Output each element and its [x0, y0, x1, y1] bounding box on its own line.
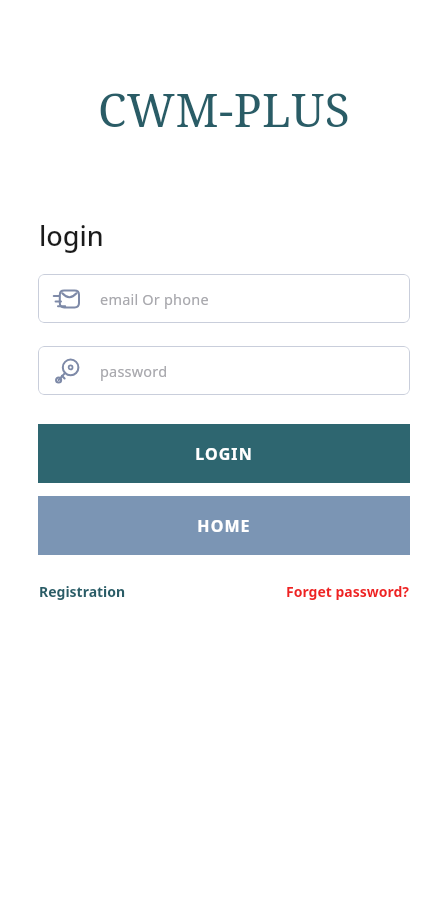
button[interactable]: Email [38, 274, 410, 323]
staticText: Registration [39, 582, 126, 601]
button[interactable]: Password [38, 346, 410, 395]
button[interactable]: HOME [38, 496, 410, 555]
staticText: LOGIN [195, 443, 253, 465]
button[interactable]: Registration [39, 579, 126, 604]
staticText: CWM-PLUS [98, 78, 351, 141]
other: Password [52, 356, 82, 386]
staticText: email Or phone [100, 289, 209, 309]
button[interactable]: LOGIN [38, 424, 410, 483]
other: Email [52, 284, 82, 314]
staticText: Forget password? [286, 582, 410, 601]
staticText: password [100, 361, 168, 381]
staticText: login [39, 217, 104, 254]
staticText: HOME [197, 515, 251, 537]
button[interactable]: Forget password? [286, 579, 410, 604]
